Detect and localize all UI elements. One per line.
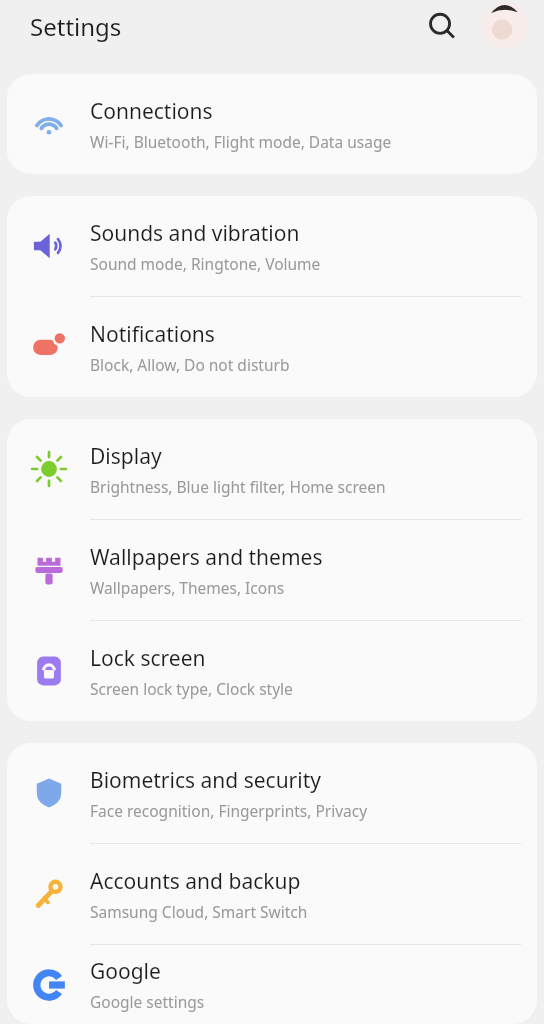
button[interactable]: Display bbox=[7, 419, 537, 519]
staticText: Sound mode, Ringtone, Volume bbox=[90, 253, 321, 274]
button[interactable]: Connections bbox=[7, 74, 537, 174]
staticText: Brightness, Blue light filter, Home scre… bbox=[90, 476, 386, 497]
staticText: Settings bbox=[30, 10, 122, 43]
staticText: Notifications bbox=[90, 320, 215, 349]
staticText: Accounts and backup bbox=[90, 867, 301, 896]
staticText: Wallpapers and themes bbox=[90, 543, 323, 572]
staticText: Display bbox=[90, 442, 162, 471]
button[interactable]: Wallpapers and themes bbox=[7, 520, 537, 620]
staticText: Face recognition, Fingerprints, Privacy bbox=[90, 800, 368, 821]
button[interactable]: Biometrics and security bbox=[7, 743, 537, 843]
button[interactable]: Sounds and vibration bbox=[7, 196, 537, 296]
button[interactable]: Accounts and backup bbox=[7, 844, 537, 944]
button[interactable]: Google bbox=[7, 945, 537, 1024]
staticText: Biometrics and security bbox=[90, 766, 321, 795]
staticText: Samsung Cloud, Smart Switch bbox=[90, 901, 308, 922]
staticText: Google settings bbox=[90, 991, 205, 1012]
staticText: Wi-Fi, Bluetooth, Flight mode, Data usag… bbox=[90, 131, 392, 152]
button[interactable]: Lock screen bbox=[7, 621, 537, 721]
staticText: Block, Allow, Do not disturb bbox=[90, 354, 290, 375]
button[interactable]: Profile bbox=[481, 3, 527, 49]
staticText: Screen lock type, Clock style bbox=[90, 678, 293, 699]
staticText: Lock screen bbox=[90, 644, 206, 673]
staticText: Google bbox=[90, 957, 161, 986]
button[interactable]: Search bbox=[420, 4, 464, 48]
staticText: Sounds and vibration bbox=[90, 219, 300, 248]
button[interactable]: Notifications bbox=[7, 297, 537, 397]
staticText: Connections bbox=[90, 97, 213, 126]
staticText: Wallpapers, Themes, Icons bbox=[90, 577, 285, 598]
